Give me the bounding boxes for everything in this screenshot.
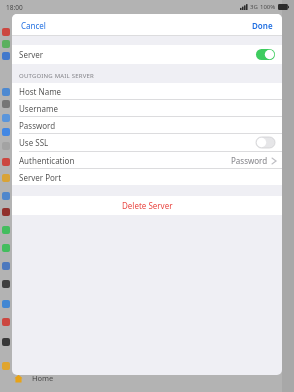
button[interactable]: Toggle off bbox=[256, 137, 275, 148]
button[interactable]: Host Name bbox=[12, 83, 282, 99]
staticText: Server bbox=[19, 49, 44, 60]
staticText: Cancel bbox=[21, 20, 46, 31]
staticText: Password bbox=[19, 120, 56, 131]
staticText: Password bbox=[231, 155, 268, 166]
staticText: Done bbox=[252, 20, 273, 31]
button[interactable]: Done bbox=[243, 16, 282, 35]
staticText: Server Port bbox=[19, 172, 62, 183]
button[interactable] bbox=[12, 45, 282, 64]
staticText: OUTGOING MAIL SERVER bbox=[19, 72, 94, 80]
staticText: Host Name bbox=[19, 86, 62, 97]
staticText: Username bbox=[19, 103, 58, 114]
button[interactable]: Toggle on bbox=[256, 49, 275, 60]
button[interactable]: Authentication bbox=[12, 152, 282, 168]
staticText: 18:00 bbox=[6, 3, 23, 12]
button[interactable]: Username bbox=[12, 100, 282, 116]
staticText: Use SSL bbox=[19, 137, 49, 148]
staticText: Delete Server bbox=[122, 200, 173, 211]
button[interactable]: Password bbox=[12, 117, 282, 133]
button[interactable]: Delete Server bbox=[12, 196, 282, 215]
staticText: Home bbox=[32, 373, 54, 383]
staticText: Authentication bbox=[19, 155, 75, 166]
button[interactable]: Server Port bbox=[12, 169, 282, 185]
staticText: 3G bbox=[250, 3, 258, 11]
staticText: 100% bbox=[260, 3, 276, 11]
button[interactable]: Cancel bbox=[12, 16, 55, 35]
button[interactable]: Use SSL bbox=[12, 134, 282, 151]
